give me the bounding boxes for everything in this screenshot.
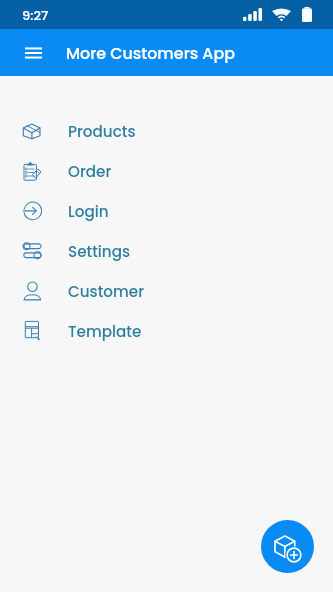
staticText: More Customers App <box>66 42 235 64</box>
button[interactable]: Settings <box>0 231 333 271</box>
button[interactable]: Template <box>0 311 333 351</box>
staticText: 9:27 <box>22 6 49 24</box>
staticText: Settings <box>68 241 131 262</box>
staticText: Customer <box>68 281 145 302</box>
button[interactable]: Open navigation drawer <box>15 35 51 71</box>
button[interactable]: Products <box>0 111 333 151</box>
button[interactable]: Customer <box>0 271 333 311</box>
staticText: Order <box>68 161 112 182</box>
staticText: Template <box>68 321 142 342</box>
staticText: Login <box>68 201 109 222</box>
button[interactable]: Login <box>0 191 333 231</box>
button[interactable]: Order <box>0 151 333 191</box>
button[interactable]: Add new product <box>261 520 314 573</box>
staticText: Products <box>68 121 136 142</box>
